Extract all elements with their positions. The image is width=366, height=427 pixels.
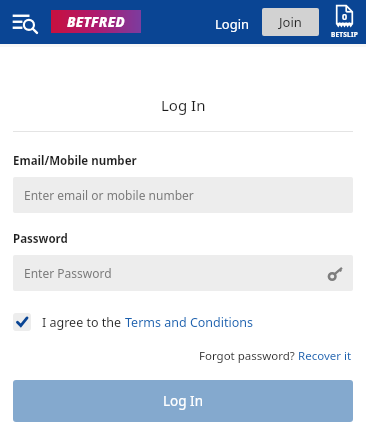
staticText: Log In <box>163 392 203 410</box>
staticText: Join <box>279 13 302 31</box>
button[interactable]: Terms and Conditions <box>125 314 254 331</box>
button[interactable]: I agree to the <box>13 313 254 331</box>
staticText: Login <box>215 15 250 33</box>
staticText: Forgot password? <box>199 348 298 364</box>
staticText: Enter email or mobile number <box>24 187 194 203</box>
staticText: Email/Mobile number <box>13 153 137 169</box>
staticText: 0 <box>342 10 348 22</box>
button[interactable]: Betslip <box>328 4 361 39</box>
staticText: BETSLIP <box>331 30 358 39</box>
button[interactable]: Log In <box>13 380 353 422</box>
button[interactable]: Join <box>262 8 319 36</box>
staticText: Enter Password <box>24 265 112 281</box>
button[interactable]: Login <box>212 13 253 35</box>
staticText: BETFRED <box>67 13 125 31</box>
staticText: Password <box>13 231 68 247</box>
button[interactable]: Enter Password <box>13 255 353 291</box>
staticText: Terms and Conditions <box>125 314 254 331</box>
staticText: Recover it <box>298 348 352 364</box>
button[interactable]: BETFRED <box>51 10 141 33</box>
staticText: I agree to the <box>42 314 125 331</box>
button[interactable]: Recover it <box>298 348 352 364</box>
button[interactable]: Menu and search <box>11 10 39 34</box>
button[interactable]: Show password <box>328 266 343 281</box>
button[interactable]: Enter email or mobile number <box>13 177 353 213</box>
staticText: Log In <box>161 95 206 115</box>
